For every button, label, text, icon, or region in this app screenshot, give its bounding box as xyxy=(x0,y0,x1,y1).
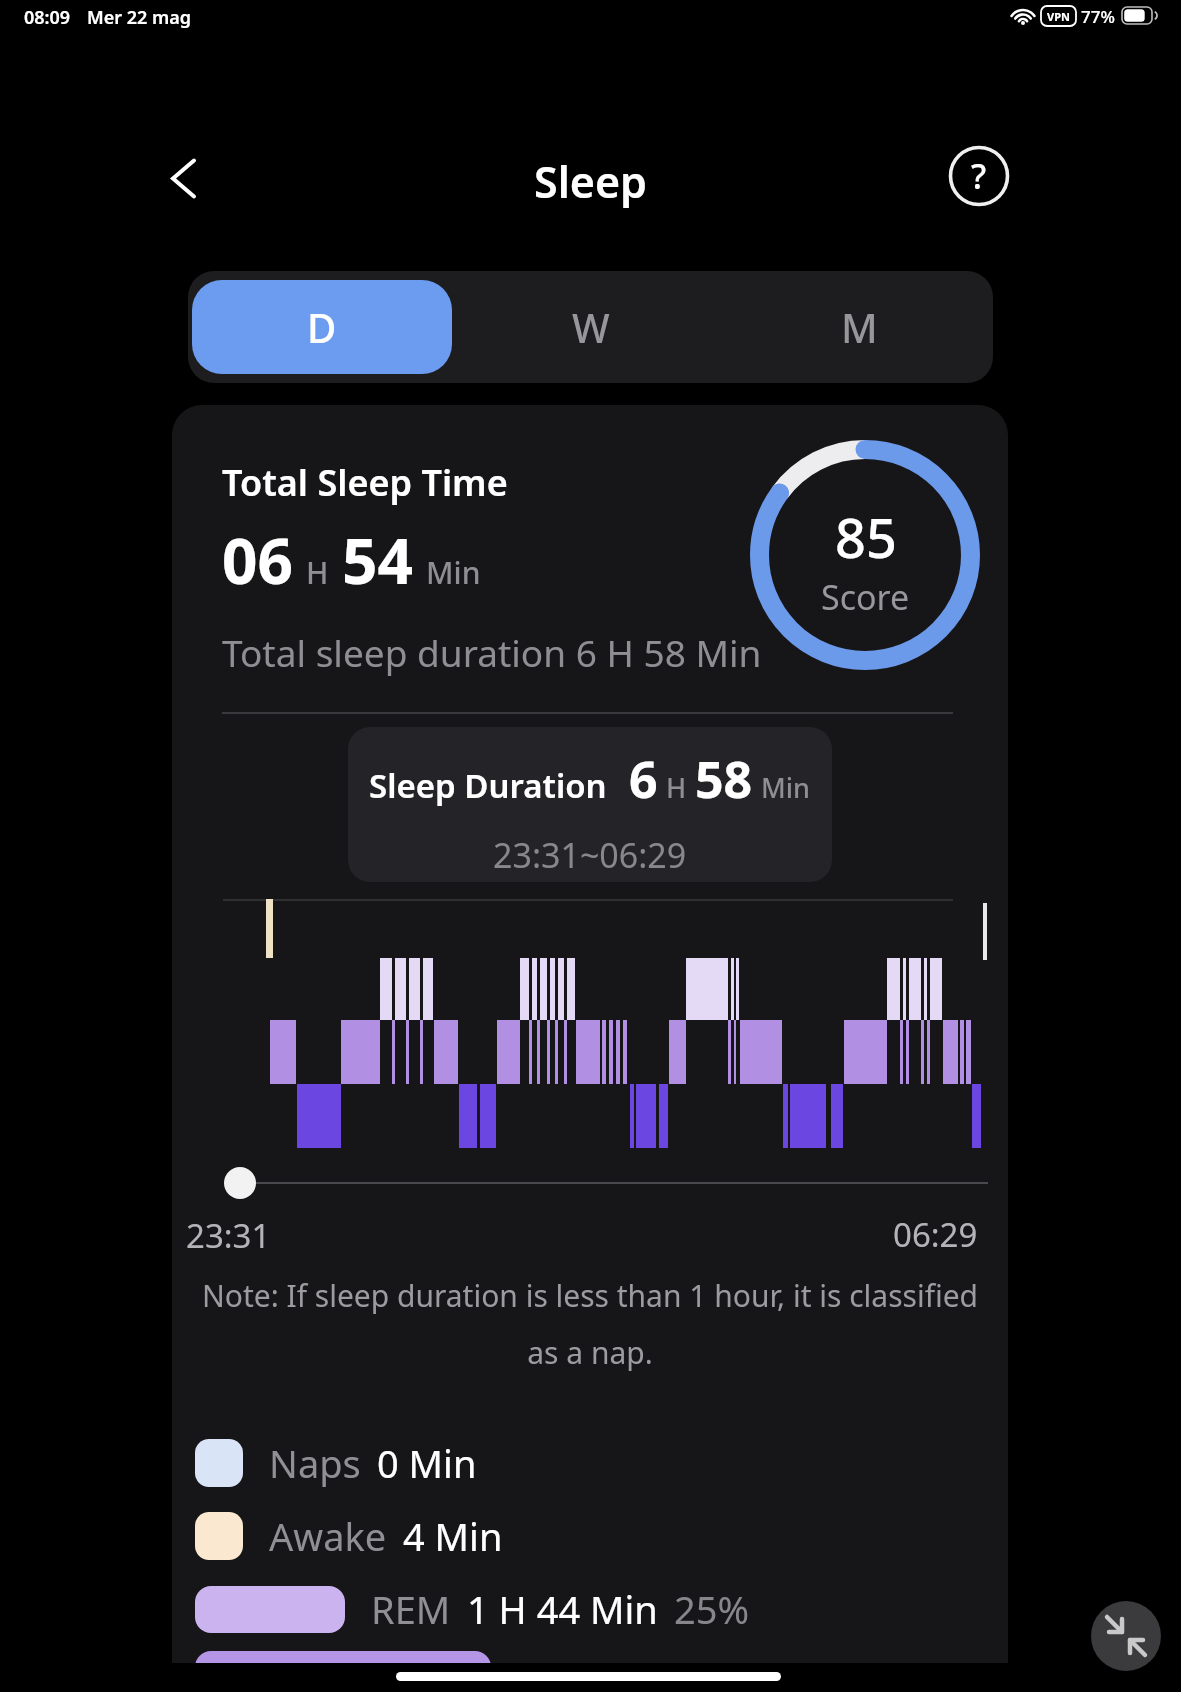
staticText: Sleep xyxy=(0,152,1181,211)
button[interactable] xyxy=(1091,1601,1161,1671)
staticText: Note: If sleep duration is less than 1 h… xyxy=(172,1275,1008,1316)
button[interactable]: ? xyxy=(945,142,1013,210)
staticText: Score xyxy=(821,574,910,620)
staticText: 23:31~06:29 xyxy=(493,832,687,878)
button[interactable]: W xyxy=(456,271,725,383)
staticText: Total Sleep Time xyxy=(222,458,508,507)
button[interactable]: M xyxy=(725,271,993,383)
staticText: 4 Min xyxy=(403,1510,503,1562)
staticText: Naps xyxy=(269,1437,361,1489)
staticText: 54 xyxy=(342,518,413,602)
staticText: 25% xyxy=(674,1583,750,1635)
staticText: 85 xyxy=(835,500,897,574)
button[interactable] xyxy=(158,148,208,208)
staticText: W xyxy=(572,300,610,354)
staticText: H xyxy=(306,552,329,593)
staticText: REM xyxy=(371,1583,451,1635)
button[interactable]: D xyxy=(192,280,452,374)
staticText: as a nap. xyxy=(172,1332,1008,1373)
button[interactable]: Naps xyxy=(195,1437,477,1489)
staticText: H xyxy=(666,769,687,806)
button[interactable]: Awake xyxy=(195,1510,503,1562)
staticText: VPN xyxy=(1047,9,1070,24)
staticText: 6 xyxy=(629,745,658,813)
staticText: 0 Min xyxy=(377,1437,477,1489)
staticText: Sleep Duration xyxy=(369,763,607,808)
staticText: 1 H 44 Min xyxy=(467,1583,658,1635)
staticText: 08:09 xyxy=(24,5,71,30)
staticText: 06:29 xyxy=(893,1212,978,1257)
button[interactable]: REM xyxy=(195,1583,750,1635)
staticText: Total sleep duration 6 H 58 Min xyxy=(222,627,762,677)
staticText: M xyxy=(841,300,878,354)
staticText: Min xyxy=(426,552,481,593)
staticText: D xyxy=(307,300,337,354)
staticText: 23:31 xyxy=(186,1213,271,1258)
staticText: 06 xyxy=(222,518,293,602)
staticText: 58 xyxy=(695,745,753,813)
staticText: Min xyxy=(761,769,811,806)
staticText: 77% xyxy=(1081,5,1115,28)
staticText: ? xyxy=(971,153,987,199)
staticText: Awake xyxy=(269,1510,387,1562)
staticText: Mer 22 mag xyxy=(87,5,192,30)
